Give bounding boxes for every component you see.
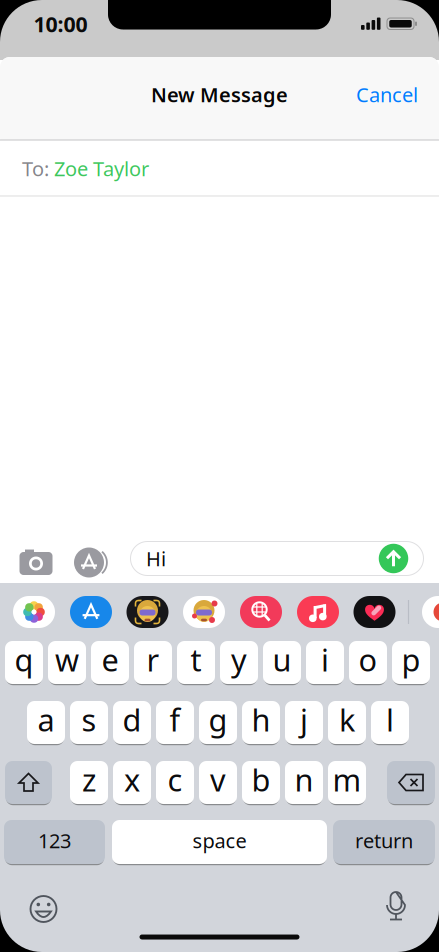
button[interactable]: return <box>333 820 435 864</box>
button[interactable]: e <box>91 641 129 684</box>
button[interactable]: Message field <box>130 541 424 576</box>
staticText: c <box>167 759 182 800</box>
button[interactable]: r <box>134 641 172 684</box>
button[interactable]: Memoji <box>126 596 168 628</box>
staticText: g <box>208 699 227 740</box>
button[interactable]: a <box>27 701 65 744</box>
button[interactable]: l <box>371 701 409 744</box>
staticText: l <box>386 699 394 740</box>
button[interactable]: o <box>349 641 387 684</box>
staticText: i <box>321 639 329 680</box>
staticText: o <box>358 639 377 680</box>
staticText: z <box>82 759 96 800</box>
staticText: y <box>231 639 247 680</box>
button[interactable]: Shift <box>5 761 52 804</box>
button[interactable]: h <box>242 701 280 744</box>
button[interactable]: d <box>113 701 151 744</box>
staticText: b <box>251 759 270 800</box>
staticText: e <box>101 639 118 680</box>
staticText: space <box>192 827 246 854</box>
staticText: Cancel <box>356 81 418 108</box>
button[interactable]: App Store <box>70 596 112 628</box>
button[interactable]: Camera <box>14 545 58 579</box>
staticText: r <box>146 639 159 680</box>
button[interactable]: q <box>5 641 43 684</box>
staticText: x <box>124 759 140 800</box>
button[interactable]: Music <box>297 596 339 628</box>
staticText: Zoe Taylor <box>54 155 149 182</box>
button[interactable]: Send <box>379 544 408 573</box>
button[interactable]: t <box>177 641 215 684</box>
button[interactable]: s <box>70 701 108 744</box>
staticText: New Message <box>151 81 288 108</box>
staticText: return <box>355 827 413 854</box>
button[interactable]: Dictation <box>381 891 411 923</box>
staticText: To: <box>22 155 49 182</box>
button[interactable]: k <box>328 701 366 744</box>
button[interactable]: v <box>199 761 237 804</box>
button[interactable]: b <box>242 761 280 804</box>
button[interactable]: g <box>199 701 237 744</box>
button[interactable]: Delete <box>387 761 435 804</box>
staticText: n <box>294 759 313 800</box>
staticText: k <box>339 699 355 740</box>
staticText: p <box>401 639 420 680</box>
button[interactable]: Cancel <box>356 81 418 108</box>
button[interactable]: w <box>48 641 86 684</box>
staticText: 123 <box>38 827 71 854</box>
button[interactable]: More apps <box>422 596 439 628</box>
button[interactable]: n <box>285 761 323 804</box>
button[interactable]: space <box>112 820 327 864</box>
staticText: v <box>210 759 226 800</box>
staticText: t <box>190 639 201 680</box>
button[interactable]: u <box>263 641 301 684</box>
staticText: 10:00 <box>33 10 87 38</box>
staticText: h <box>251 699 270 740</box>
button[interactable]: To: Zoe Taylor <box>0 140 439 196</box>
staticText: j <box>300 699 308 740</box>
staticText: s <box>81 699 96 740</box>
staticText: f <box>169 699 180 740</box>
button[interactable]: f <box>156 701 194 744</box>
button[interactable]: z <box>70 761 108 804</box>
button[interactable]: c <box>156 761 194 804</box>
button[interactable]: Images <box>240 596 282 628</box>
staticText: a <box>37 699 54 740</box>
button[interactable]: j <box>285 701 323 744</box>
button[interactable]: Stickers <box>183 596 225 628</box>
staticText: q <box>14 639 33 680</box>
button[interactable]: 123 <box>4 820 105 864</box>
button[interactable]: Emoji <box>28 894 58 924</box>
button[interactable]: iMessage apps <box>65 545 109 579</box>
button[interactable]: y <box>220 641 258 684</box>
staticText: Hi <box>146 545 166 572</box>
staticText: u <box>272 639 291 680</box>
button[interactable]: Photos <box>13 596 55 628</box>
button[interactable]: i <box>306 641 344 684</box>
button[interactable]: p <box>392 641 430 684</box>
button[interactable]: m <box>328 761 366 804</box>
button[interactable]: Digital Touch <box>353 596 395 628</box>
staticText: m <box>332 759 361 800</box>
staticText: d <box>122 699 141 740</box>
staticText: w <box>55 639 79 680</box>
button[interactable]: x <box>113 761 151 804</box>
